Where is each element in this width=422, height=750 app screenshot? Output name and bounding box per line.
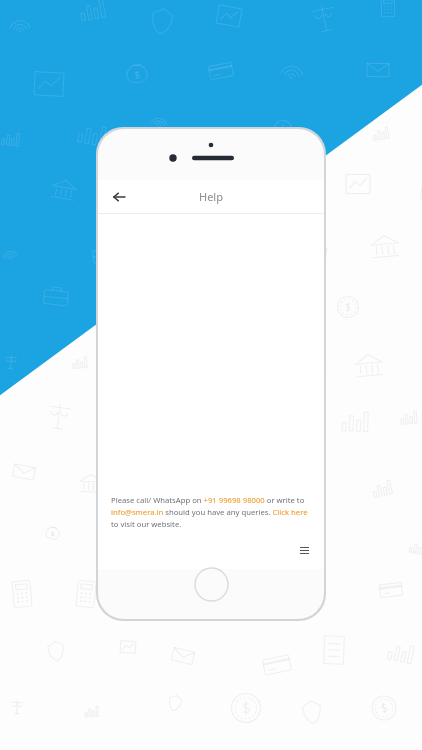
staticText: Please call/ WhatsApp on +91 99698 98000… bbox=[111, 495, 310, 529]
button[interactable]: Back bbox=[107, 185, 131, 209]
button[interactable]: Menu bbox=[297, 543, 311, 557]
staticText: Help bbox=[199, 189, 223, 204]
